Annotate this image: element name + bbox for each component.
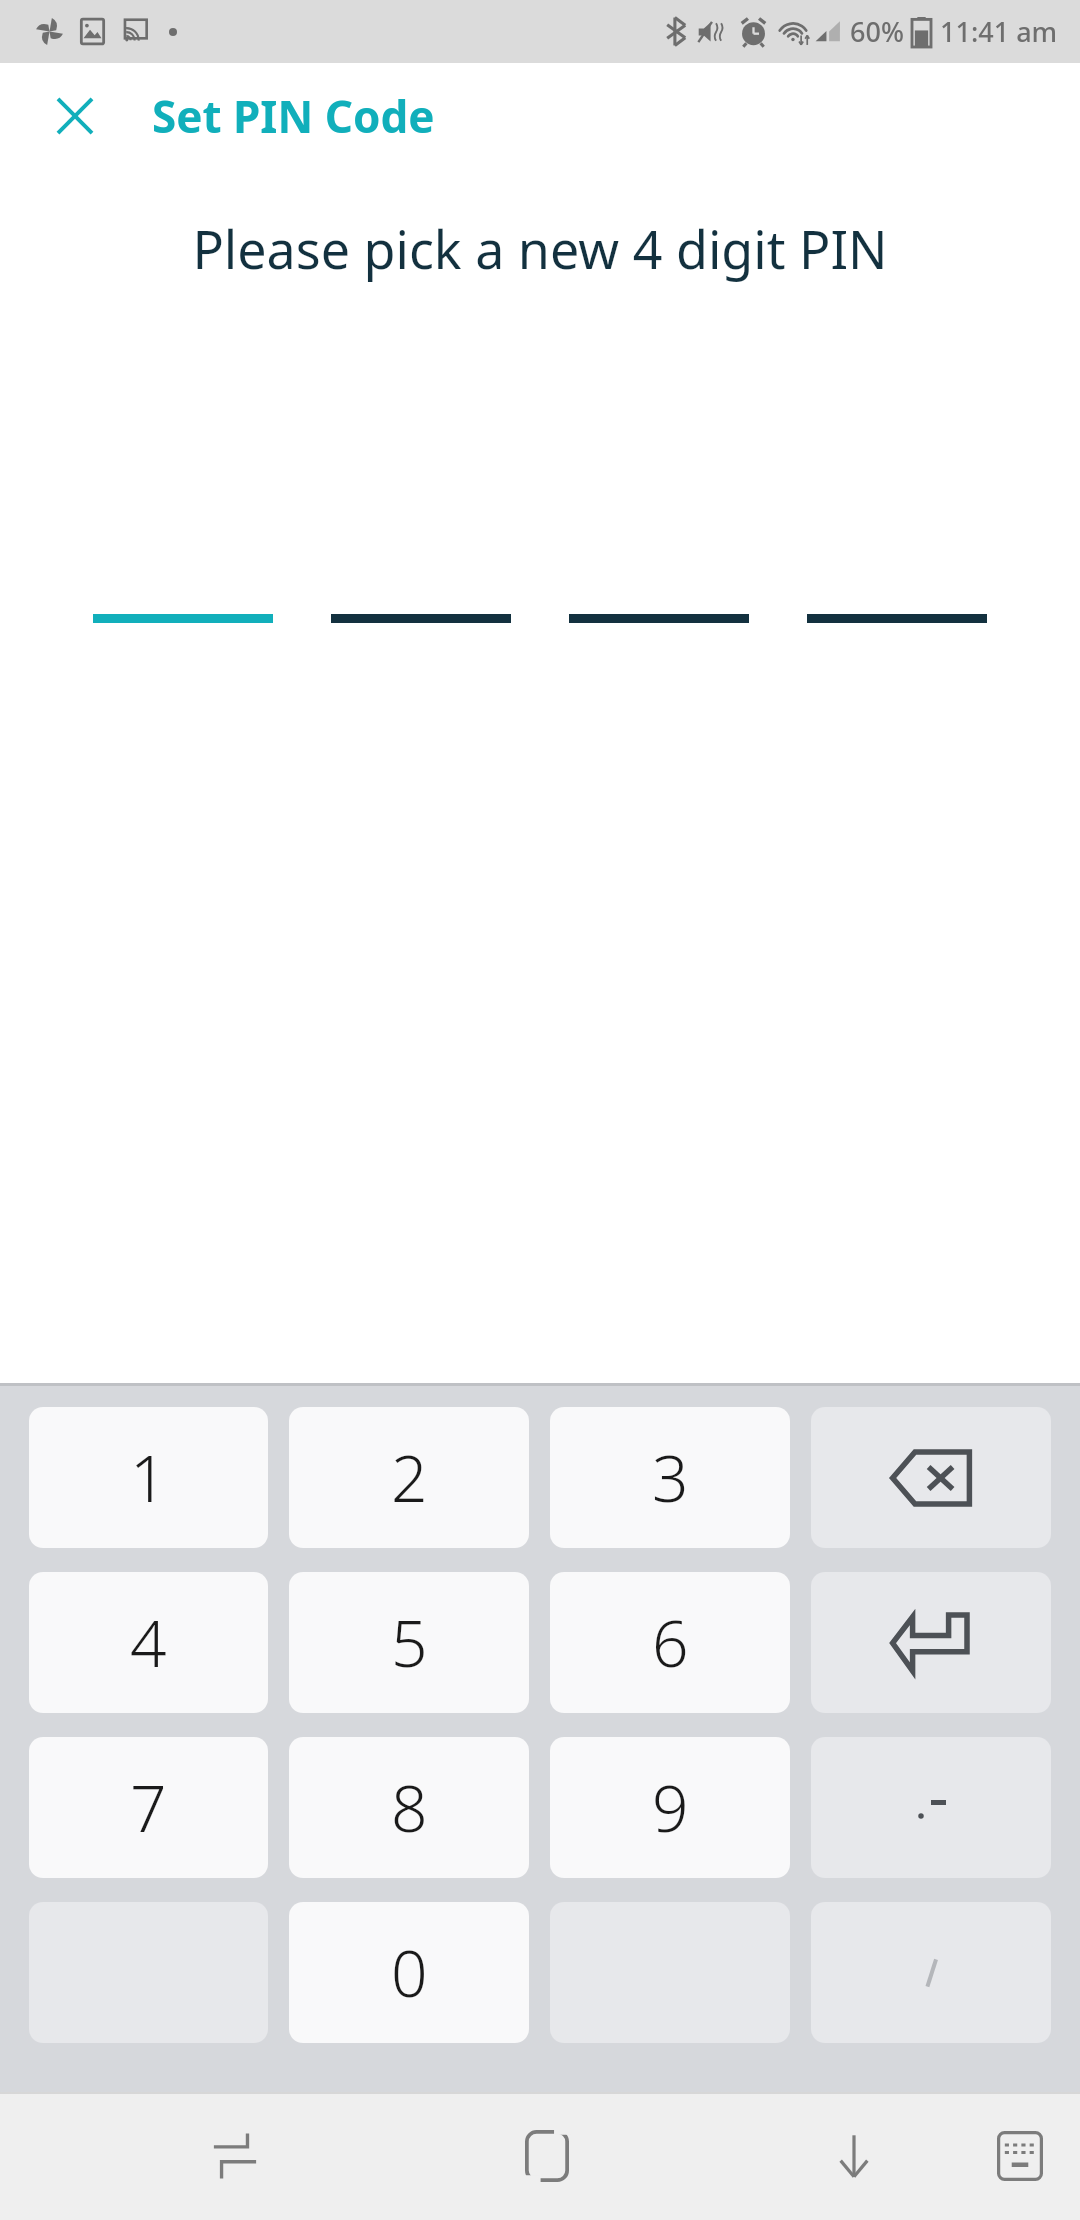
button[interactable]: 9 xyxy=(550,1737,790,1878)
button[interactable] xyxy=(569,596,749,640)
button[interactable]: 2 xyxy=(289,1407,529,1548)
staticText: 60% xyxy=(850,13,904,50)
button[interactable]: 7 xyxy=(29,1737,268,1878)
staticText: 5 xyxy=(391,1599,428,1686)
button[interactable] xyxy=(93,596,273,640)
staticText: 6 xyxy=(652,1599,689,1686)
button[interactable]: Hide keyboard xyxy=(794,2092,914,2220)
button[interactable]: Symbols xyxy=(811,1902,1051,2043)
staticText: 0 xyxy=(391,1929,428,2016)
button[interactable] xyxy=(807,596,987,640)
button[interactable]: Symbols xyxy=(811,1737,1051,1878)
button[interactable]: 8 xyxy=(289,1737,529,1878)
staticText: 2 xyxy=(391,1434,428,1521)
button[interactable]: 0 xyxy=(289,1902,529,2043)
staticText: Please pick a new 4 digit PIN xyxy=(0,213,1080,284)
button[interactable]: 6 xyxy=(550,1572,790,1713)
button[interactable]: 1 xyxy=(29,1407,268,1548)
button[interactable] xyxy=(331,596,511,640)
button[interactable]: Delete xyxy=(811,1407,1051,1548)
button[interactable]: Close xyxy=(34,75,116,157)
staticText: 7 xyxy=(130,1764,167,1851)
button[interactable]: 5 xyxy=(289,1572,529,1713)
staticText: Set PIN Code xyxy=(152,86,435,146)
button[interactable]: Recents xyxy=(170,2092,300,2220)
staticText: 1 xyxy=(130,1434,167,1521)
button[interactable]: Keyboard xyxy=(960,2092,1080,2220)
staticText: 8 xyxy=(391,1764,428,1851)
staticText: 4 xyxy=(130,1599,167,1686)
staticText: 9 xyxy=(652,1764,689,1851)
button[interactable]: Home xyxy=(482,2092,612,2220)
button[interactable]: 4 xyxy=(29,1572,268,1713)
staticText: 3 xyxy=(652,1434,689,1521)
button[interactable]: Enter xyxy=(811,1572,1051,1713)
button[interactable]: 3 xyxy=(550,1407,790,1548)
staticText: 11:41 am xyxy=(940,13,1058,50)
